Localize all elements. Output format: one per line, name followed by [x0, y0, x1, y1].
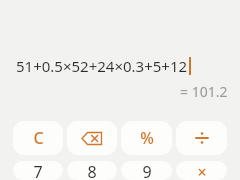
- button[interactable]: Backspace: [67, 121, 117, 155]
- button[interactable]: ×: [176, 161, 227, 180]
- button[interactable]: 7: [13, 161, 63, 180]
- staticText: 7: [33, 161, 43, 180]
- staticText: ×: [197, 161, 207, 180]
- staticText: C: [33, 127, 44, 149]
- button[interactable]: Divide: [176, 121, 227, 155]
- button[interactable]: %: [121, 121, 172, 155]
- staticText: = 101.2: [180, 82, 228, 101]
- staticText: 9: [142, 161, 152, 180]
- button[interactable]: 9: [121, 161, 172, 180]
- button[interactable]: C: [13, 121, 63, 155]
- staticText: 51+0.5×52+24×0.3+5+12: [16, 56, 188, 76]
- staticText: 8: [87, 161, 97, 180]
- button[interactable]: 8: [67, 161, 117, 180]
- staticText: %: [140, 127, 154, 149]
